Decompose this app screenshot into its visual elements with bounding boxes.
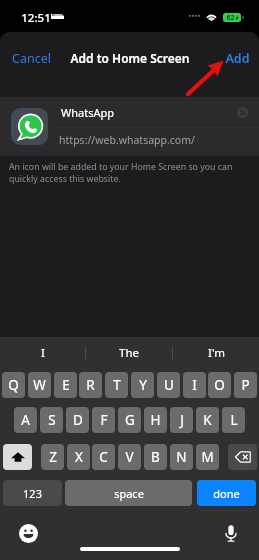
staticText: S [48,411,56,429]
staticText: C [99,448,108,466]
button[interactable]: Dictation [220,523,241,544]
button[interactable]: Backspace [228,444,257,470]
button[interactable]: B [144,444,167,470]
button[interactable]: A [14,407,37,433]
staticText: 123 [23,486,42,501]
staticText: L [230,411,238,429]
button[interactable]: S [40,407,63,433]
button[interactable]: E [54,372,77,398]
button[interactable]: H [144,407,167,433]
staticText: I [192,376,197,394]
staticText: An icon will be added to your Home Scree… [9,161,233,184]
staticText: D [73,411,83,429]
staticText: G [125,411,135,429]
staticText: T [113,376,121,394]
button[interactable]: N [170,444,193,470]
button[interactable]: D [66,407,89,433]
button[interactable]: I'm [173,337,259,368]
staticText: 12:51 [21,10,51,26]
staticText: N [176,448,187,466]
staticText: Q [8,376,19,394]
staticText: Cancel [12,50,51,67]
button[interactable]: space [65,480,192,506]
staticText: P [241,376,250,394]
staticText: H [150,411,161,429]
staticText: done [213,486,240,501]
staticText: Y [139,376,147,394]
button[interactable]: Shift [3,444,32,470]
button[interactable]: 123 [3,480,62,506]
staticText: R [86,376,95,394]
button[interactable]: Q [2,372,25,398]
staticText: J [180,411,184,429]
staticText: A [21,411,30,429]
button[interactable]: O [208,372,231,398]
button[interactable]: L [222,407,245,433]
button[interactable]: K [196,407,219,433]
staticText: Z [49,448,57,466]
staticText: I'm [208,345,225,361]
staticText: F [100,411,108,429]
button[interactable]: T [105,372,128,398]
button[interactable]: V [118,444,141,470]
button[interactable]: Cancel [0,43,63,74]
staticText: 62 [226,13,235,22]
staticText: WhatsApp [61,105,114,120]
staticText: U [164,376,174,394]
button[interactable]: Clear [234,104,251,121]
button[interactable]: P [234,372,257,398]
button[interactable]: G [118,407,141,433]
button[interactable]: Add [216,43,259,74]
staticText: Add [225,50,250,67]
staticText: X [75,448,83,466]
button[interactable]: R [79,372,102,398]
staticText: Add to Home Screen [70,50,190,66]
button[interactable]: The [86,337,172,368]
button[interactable]: Emoji [18,523,39,544]
button[interactable]: J [170,407,193,433]
button[interactable]: done [197,480,256,506]
staticText: B [151,448,160,466]
button[interactable]: U [157,372,180,398]
staticText: https://web.whatsapp.com/ [59,133,195,147]
button[interactable]: W [28,372,51,398]
button[interactable]: C [92,444,115,470]
staticText: space [114,486,144,501]
button[interactable]: Z [41,444,64,470]
staticText: W [33,376,46,394]
button[interactable]: I [183,372,206,398]
button[interactable]: Y [131,372,154,398]
staticText: I [41,345,45,361]
staticText: K [203,411,212,429]
button[interactable]: X [67,444,90,470]
staticText: The [119,345,139,361]
button[interactable]: I [0,337,85,368]
button[interactable]: M [196,444,219,470]
staticText: V [125,448,134,466]
button[interactable]: F [92,407,115,433]
staticText: E [62,376,70,394]
staticText: M [201,448,214,466]
staticText: O [214,376,225,394]
